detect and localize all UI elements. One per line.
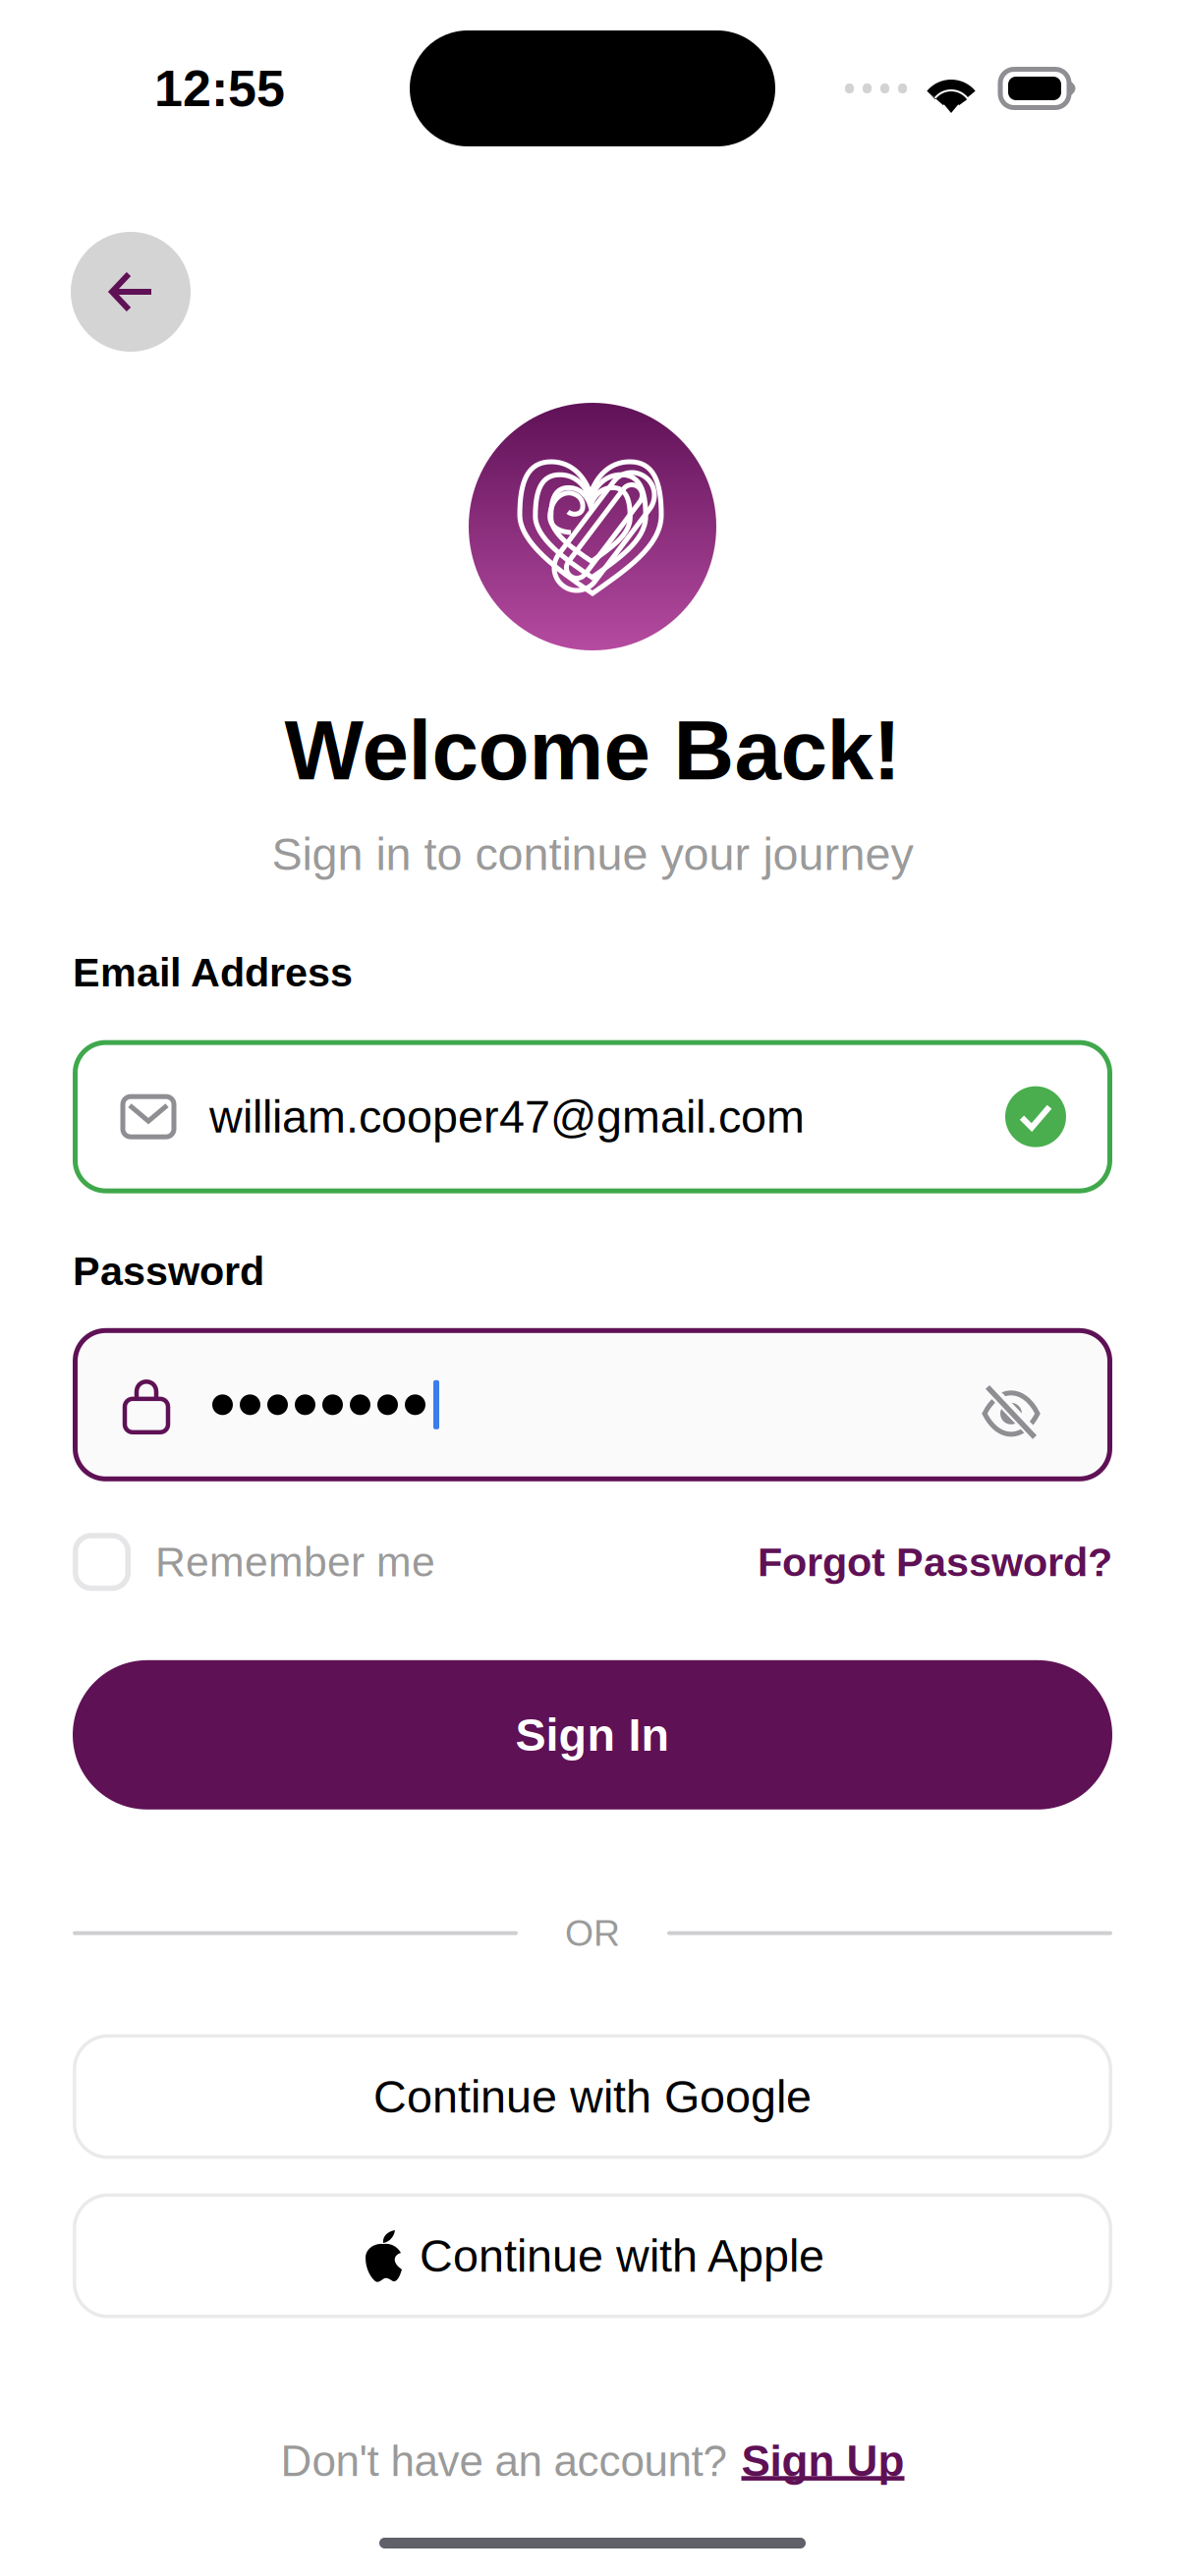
staticText: Forgot Password? <box>758 1539 1112 1585</box>
button[interactable]: Continue with Apple <box>73 2193 1112 2318</box>
staticText: Welcome Back! <box>284 703 901 797</box>
button[interactable]: Back <box>71 232 191 352</box>
staticText: OR <box>565 1913 620 1954</box>
button[interactable]: Show password <box>982 1375 1041 1434</box>
button[interactable]: Sign In <box>73 1660 1112 1809</box>
staticText: Continue with Google <box>373 2071 812 2122</box>
staticText: 12:55 <box>154 60 285 117</box>
button[interactable]: Remember me <box>73 1533 435 1591</box>
staticText: Password <box>73 1248 264 1294</box>
staticText: Sign In <box>515 1709 670 1760</box>
button[interactable]: Forgot Password? <box>758 1533 1112 1591</box>
staticText: Remember me <box>155 1539 435 1585</box>
staticText: Sign in to continue your journey <box>272 829 913 880</box>
staticText: Sign Up <box>741 2437 904 2485</box>
staticText: Email Address <box>73 950 353 995</box>
button[interactable]: Don't have an account? <box>281 2436 904 2487</box>
button[interactable]: Continue with Google <box>73 2034 1112 2159</box>
staticText: william.cooper47@gmail.com <box>209 1091 805 1142</box>
staticText: Continue with Apple <box>420 2230 824 2281</box>
staticText: Don't have an account? <box>281 2437 727 2485</box>
